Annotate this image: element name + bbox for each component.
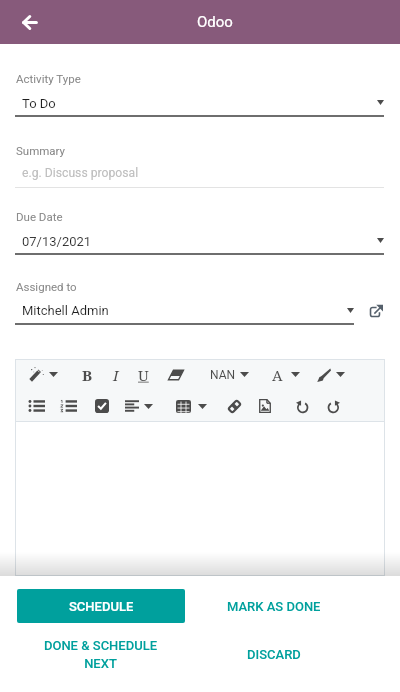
staticText: DISCARD <box>247 647 301 662</box>
button[interactable]: Bulleted list <box>24 395 50 417</box>
staticText: Activity Type <box>16 72 81 85</box>
button[interactable]: Undo <box>291 395 313 418</box>
staticText: Odoo <box>197 13 233 31</box>
staticText: SCHEDULE <box>69 599 134 614</box>
button[interactable]: Checklist <box>90 394 114 418</box>
button[interactable]: More options <box>140 398 157 415</box>
button[interactable]: Align <box>120 395 144 417</box>
staticText: DONE & SCHEDULE NEXT <box>38 638 163 671</box>
button[interactable]: Redo <box>323 395 345 418</box>
button[interactable]: SCHEDULE <box>17 589 185 623</box>
staticText: Mitchell Admin <box>22 303 109 318</box>
button[interactable]: Numbered list <box>55 395 82 417</box>
button[interactable]: B <box>76 364 98 386</box>
button[interactable]: More options <box>332 366 349 383</box>
staticText: 07/13/2021 <box>22 234 92 249</box>
staticText: I <box>113 365 119 385</box>
staticText: MARK AS DONE <box>227 599 321 614</box>
staticText: B <box>82 365 93 385</box>
button[interactable]: Highlight <box>312 363 336 387</box>
button[interactable]: Link <box>223 395 246 418</box>
staticText: NAN <box>210 368 236 382</box>
button[interactable]: More options <box>236 366 253 383</box>
button[interactable]: Table <box>171 395 196 418</box>
button[interactable]: Clear format <box>163 364 189 386</box>
button[interactable]: Back <box>13 6 45 38</box>
staticText: To Do <box>22 96 56 111</box>
button[interactable]: MARK AS DONE <box>200 589 348 623</box>
button[interactable]: DISCARD <box>200 630 348 678</box>
button[interactable]: I <box>105 364 127 386</box>
button[interactable]: U <box>132 364 154 386</box>
staticText: A <box>272 365 283 385</box>
button[interactable]: Open record <box>363 300 387 324</box>
staticText: Summary <box>16 144 66 157</box>
staticText: U <box>138 365 149 385</box>
button[interactable]: More options <box>194 398 211 415</box>
staticText: e.g. Discuss proposal <box>22 166 139 180</box>
staticText: Due Date <box>16 210 63 223</box>
button[interactable]: NAN <box>204 364 241 386</box>
button[interactable]: More options <box>45 366 62 383</box>
button[interactable]: A <box>266 364 288 386</box>
button[interactable]: Image <box>254 394 276 418</box>
button[interactable]: More options <box>287 366 304 383</box>
button[interactable]: DONE & SCHEDULE NEXT <box>17 630 184 678</box>
button[interactable]: Style <box>24 362 49 387</box>
staticText: Assigned to <box>16 280 77 293</box>
